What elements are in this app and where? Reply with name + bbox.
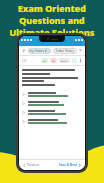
- button[interactable]: 03: [52, 58, 55, 63]
- button[interactable]: [22, 92, 82, 97]
- staticText: Save & Next: [59, 163, 77, 167]
- button[interactable]: Eng. History of ...: [28, 48, 51, 54]
- button[interactable]: Indian History: [53, 48, 77, 54]
- staticText: 1/7: [22, 59, 27, 63]
- staticText: Ultimate Solutions: [9, 26, 95, 38]
- button[interactable]: [22, 110, 82, 115]
- button[interactable]: [22, 119, 82, 124]
- staticText: 00:21: [61, 59, 68, 62]
- staticText: Exam Oriented: [18, 2, 86, 14]
- staticText: Indian History: [56, 49, 74, 53]
- button[interactable]: 24: [43, 58, 46, 63]
- staticText: Eng. History of ...: [29, 49, 50, 53]
- staticText: Previous: [27, 163, 40, 167]
- button[interactable]: Filter: [79, 49, 82, 52]
- button[interactable]: [22, 101, 82, 106]
- button[interactable]: More options: [79, 58, 82, 63]
- staticText: 03: [52, 59, 55, 62]
- staticText: Questions and: [19, 14, 85, 26]
- button[interactable]: 00:21: [61, 58, 68, 63]
- button[interactable]: Previous: [22, 162, 41, 168]
- button[interactable]: Save & Next: [58, 162, 82, 168]
- staticText: 24: [43, 59, 46, 62]
